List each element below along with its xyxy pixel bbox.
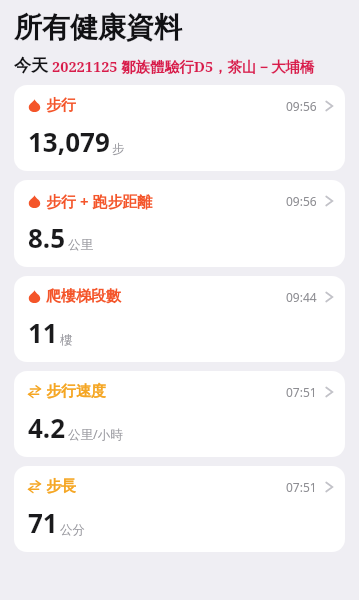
staticText: 步行 + 跑步距離 — [46, 191, 153, 211]
other: 顯示更多 步行 + 跑步距離 — [325, 194, 333, 208]
staticText: 公里/小時 — [68, 426, 123, 443]
staticText: 4.2 — [28, 410, 66, 445]
staticText: 步 — [112, 141, 125, 157]
staticText: 13,079 — [28, 124, 110, 159]
button[interactable]: 步行 + 跑步距離 — [14, 180, 345, 267]
staticText: 公分 — [60, 522, 85, 538]
other: 顯示更多 爬樓梯段數 — [325, 290, 333, 304]
other: 顯示更多 步行速度 — [325, 385, 333, 399]
button[interactable]: 步行 — [14, 85, 345, 171]
staticText: 8.5 — [28, 220, 66, 255]
other: 顯示更多 步長 — [325, 480, 333, 494]
button[interactable]: 爬樓梯段數 — [14, 276, 345, 362]
staticText: 公里 — [68, 237, 93, 253]
staticText: 09:44 — [286, 289, 317, 305]
button[interactable]: 步長 — [14, 466, 345, 552]
button[interactable]: 步行速度 — [14, 371, 345, 457]
staticText: 07:51 — [286, 479, 317, 495]
staticText: 所有健康資料 — [14, 10, 182, 45]
staticText: 樓 — [60, 332, 73, 348]
other: 顯示更多 步行 — [325, 99, 333, 113]
staticText: 今天 — [14, 55, 48, 76]
staticText: 07:51 — [286, 384, 317, 400]
staticText: 09:56 — [286, 193, 317, 209]
staticText: 20221125 鄒族體驗行D5，茶山－大埔橋 — [52, 56, 315, 76]
staticText: 09:56 — [286, 98, 317, 114]
staticText: 步行 — [46, 96, 76, 115]
staticText: 步行速度 — [46, 382, 106, 401]
staticText: 71 — [28, 505, 58, 540]
staticText: 11 — [28, 315, 58, 350]
staticText: 步長 — [46, 477, 76, 496]
staticText: 爬樓梯段數 — [46, 287, 121, 306]
